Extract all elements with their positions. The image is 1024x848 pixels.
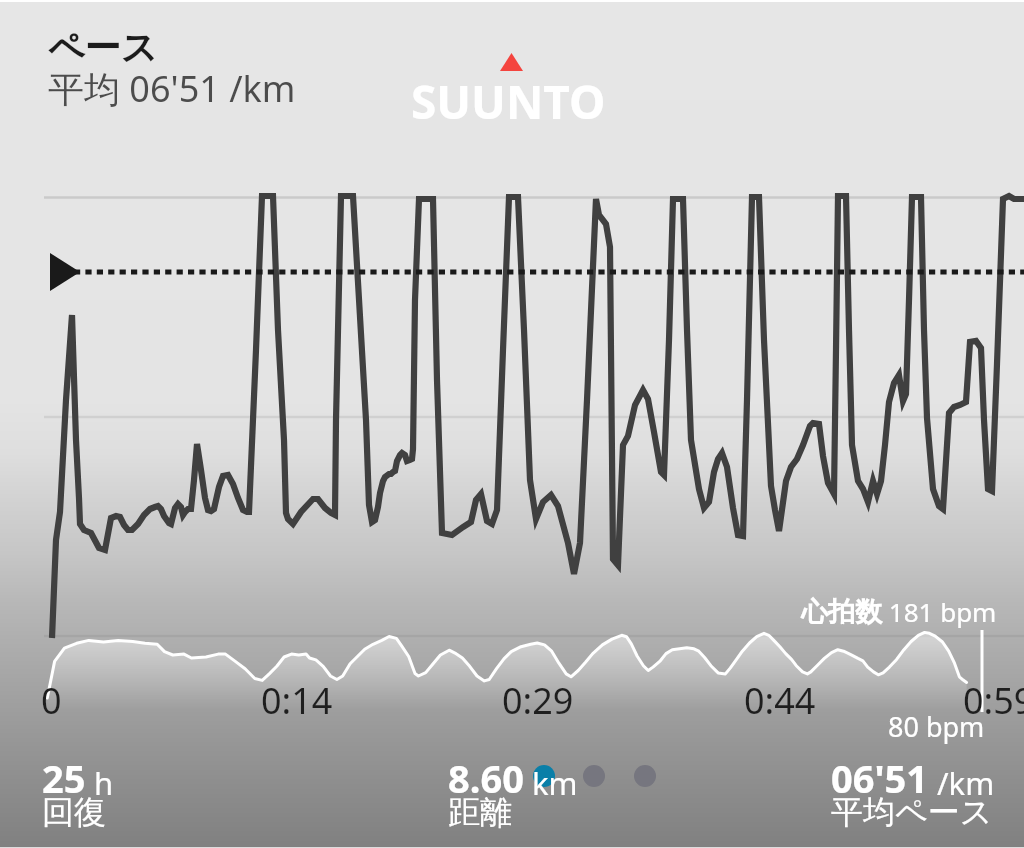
staticText: 回復 (42, 792, 106, 832)
staticText: 80 bpm (888, 708, 985, 745)
staticText: ペース (48, 25, 158, 70)
staticText: 0:59 (963, 676, 1024, 725)
button[interactable]: 06'51 (831, 752, 995, 844)
staticText: 0:14 (261, 676, 371, 725)
staticText: 平均 06'51 /km (48, 64, 296, 113)
button[interactable]: Page 2 (583, 765, 605, 787)
staticText: 181 bpm (882, 594, 997, 629)
staticText: 06'51 (831, 752, 929, 804)
button[interactable]: Page 1 (533, 765, 555, 787)
staticText: 距離 (448, 792, 512, 832)
staticText: 平均ペース (831, 792, 993, 832)
staticText: 25 (42, 752, 86, 804)
button[interactable]: 8.60 (448, 752, 578, 844)
staticText: 0 (41, 676, 151, 725)
staticText: 8.60 (448, 752, 524, 804)
button[interactable]: 25 (42, 752, 114, 844)
staticText: SUUNTO (411, 70, 606, 133)
staticText: 心拍数 (801, 595, 882, 629)
staticText: /km (929, 762, 995, 804)
staticText: h (86, 762, 114, 804)
staticText: km (524, 762, 578, 804)
staticText: 0:44 (744, 676, 854, 725)
button[interactable]: Page 3 (634, 765, 656, 787)
staticText: 0:29 (502, 676, 612, 725)
